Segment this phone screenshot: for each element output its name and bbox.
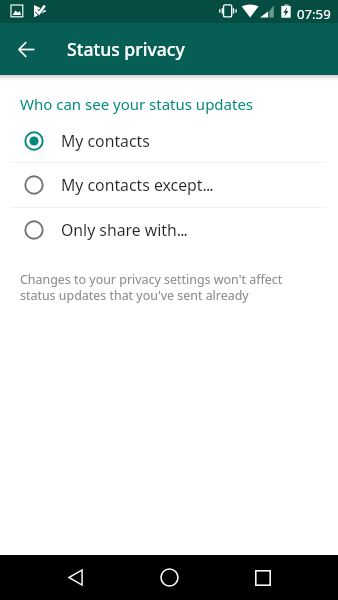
button[interactable]: Only share with...	[0, 207, 338, 252]
staticText: My contacts except...	[61, 174, 213, 196]
staticText: Who can see your status updates	[20, 94, 254, 114]
button[interactable]: Recent apps	[240, 555, 285, 600]
staticText: Only share with...	[61, 219, 188, 241]
staticText: My contacts	[61, 130, 150, 152]
button[interactable]: Home	[147, 555, 192, 600]
button[interactable]: My contacts except...	[0, 162, 338, 207]
staticText: Changes to your privacy settings won't a…	[20, 271, 283, 304]
button[interactable]: Back	[0, 23, 53, 75]
button[interactable]: Back	[53, 555, 98, 600]
button[interactable]: My contacts	[0, 118, 338, 163]
staticText: 07:59	[297, 5, 331, 23]
staticText: Status privacy	[67, 37, 185, 61]
